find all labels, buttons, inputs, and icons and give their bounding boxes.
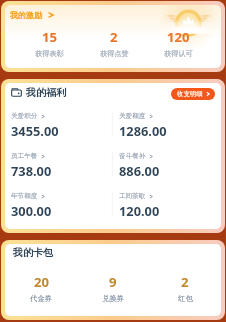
staticText: 738.00 <box>11 162 52 179</box>
staticText: 关爱额度 <box>119 112 146 120</box>
button[interactable]: 工间茶歇 <box>119 192 221 219</box>
staticText: 年节额度 <box>11 192 38 200</box>
staticText: 886.00 <box>119 162 160 179</box>
staticText: 2 <box>181 273 189 291</box>
staticText: 代金券 <box>30 294 53 303</box>
staticText: 员工午餐 <box>11 152 38 160</box>
button[interactable]: 关爱额度 <box>119 112 221 139</box>
staticText: 兑换券 <box>102 294 125 303</box>
staticText: 9 <box>109 273 117 291</box>
button[interactable]: 2 <box>149 273 221 303</box>
staticText: 收支明细 <box>177 90 203 98</box>
staticText: 获得认可 <box>164 49 193 58</box>
staticText: 获得表彰 <box>35 49 64 58</box>
staticText: 奋斗餐补 <box>119 152 146 160</box>
button[interactable]: 收支明细 <box>171 88 215 100</box>
staticText: 300.00 <box>11 202 52 219</box>
button[interactable]: 我的卡包 <box>13 246 53 259</box>
staticText: 关爱积分 <box>11 112 38 120</box>
staticText: 红包 <box>178 294 193 303</box>
staticText: 1286.00 <box>119 122 167 139</box>
staticText: 3455.00 <box>11 122 59 139</box>
other: My benefits <box>11 87 22 97</box>
button[interactable]: 120 <box>146 28 210 58</box>
staticText: 我的激励 <box>10 10 42 20</box>
button[interactable]: 20 <box>5 273 77 303</box>
staticText: 工间茶歇 <box>119 192 146 200</box>
button[interactable]: 年节额度 <box>11 192 113 219</box>
staticText: 获得点赞 <box>100 49 129 58</box>
button[interactable]: 我的激励 <box>5 5 221 68</box>
staticText: 20 <box>34 273 49 291</box>
staticText: 15 <box>42 28 57 46</box>
staticText: 我的福利 <box>26 86 66 99</box>
button[interactable]: 奋斗餐补 <box>119 152 221 179</box>
staticText: 120.00 <box>119 202 160 219</box>
staticText: 2 <box>110 28 118 46</box>
staticText: 120 <box>167 28 190 46</box>
button[interactable]: 2 <box>82 28 146 58</box>
button[interactable]: 员工午餐 <box>11 152 113 179</box>
button[interactable]: 关爱积分 <box>11 112 113 139</box>
button[interactable]: 15 <box>17 28 82 58</box>
button[interactable]: 9 <box>77 273 149 303</box>
